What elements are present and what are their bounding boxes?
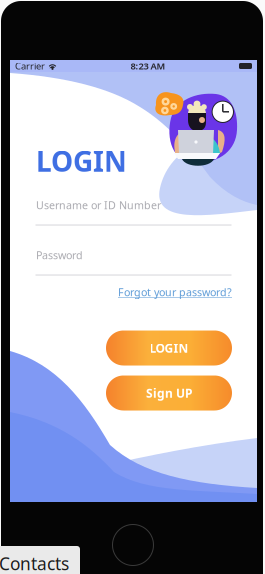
button[interactable]: LOGIN xyxy=(106,330,232,365)
button[interactable]: Sign UP xyxy=(106,375,232,410)
staticText: LOGIN xyxy=(36,142,127,180)
staticText: Forgot your password? xyxy=(118,285,232,299)
staticText: Contacts xyxy=(0,552,69,574)
button[interactable]: Forgot your password? xyxy=(118,285,232,299)
staticText: Sign UP xyxy=(146,385,192,401)
staticText: LOGIN xyxy=(149,340,188,356)
staticText: Carrier xyxy=(15,60,45,72)
staticText: Password xyxy=(36,248,83,262)
staticText: Username or ID Number xyxy=(36,198,161,212)
staticText: 8:23 AM xyxy=(130,60,165,72)
